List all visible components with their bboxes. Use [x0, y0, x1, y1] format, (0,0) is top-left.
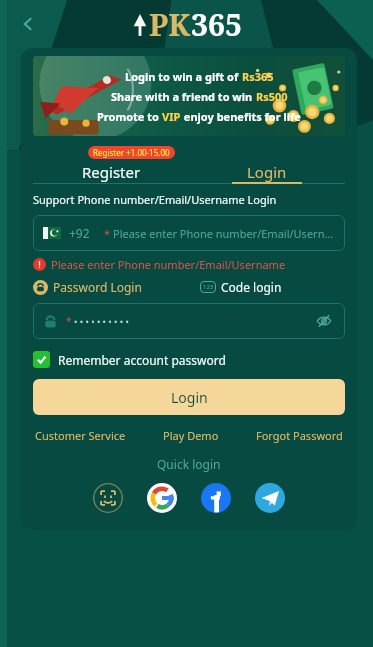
- button[interactable]: Sign in with Google: [146, 482, 178, 514]
- staticText: Please enter Phone number/Email/Username: [51, 257, 286, 272]
- staticText: Password Login: [53, 279, 142, 295]
- staticText: Code login: [221, 279, 282, 295]
- staticText: enjoy benefits for life: [181, 109, 301, 124]
- staticText: Support Phone number/Email/Username Logi…: [33, 192, 277, 207]
- button[interactable]: Play Demo: [161, 427, 221, 444]
- button[interactable]: Forgot Password: [254, 427, 345, 444]
- staticText: *: [66, 314, 72, 328]
- staticText: Promote to: [97, 109, 162, 124]
- staticText: VIP: [162, 109, 181, 124]
- button[interactable]: Remember account password: [33, 351, 226, 368]
- staticText: Share with a friend to win: [111, 89, 256, 104]
- button[interactable]: Login: [189, 146, 345, 182]
- staticText: Login to win a gift of: [125, 69, 242, 84]
- staticText: Login: [247, 162, 287, 182]
- button[interactable]: *: [33, 303, 345, 339]
- button[interactable]: Back: [8, 4, 48, 44]
- staticText: 123: [203, 283, 214, 291]
- staticText: Rs365: [242, 69, 274, 84]
- button[interactable]: Quick login: [157, 456, 221, 472]
- button[interactable]: +92: [33, 215, 345, 251]
- button[interactable]: Sign in with Telegram: [254, 482, 286, 514]
- button[interactable]: Customer Service: [33, 427, 128, 444]
- staticText: 365: [191, 4, 242, 45]
- button[interactable]: Login: [33, 379, 345, 415]
- button[interactable]: 123: [200, 279, 282, 295]
- staticText: +92: [69, 225, 90, 241]
- button[interactable]: Face ID login: [92, 482, 124, 514]
- staticText: Rs500: [256, 89, 288, 104]
- staticText: Forgot Password: [256, 428, 343, 443]
- staticText: PK: [149, 4, 191, 45]
- staticText: Register +1.00-15.00: [93, 147, 170, 158]
- staticText: Register: [82, 162, 141, 182]
- button[interactable]: Show password: [313, 310, 335, 332]
- button[interactable]: Sign in with Facebook: [200, 482, 232, 514]
- button[interactable]: Login to win a gift of: [33, 56, 345, 136]
- staticText: Please enter Phone number/Email/Usern…: [113, 226, 334, 241]
- staticText: Customer Service: [35, 428, 126, 443]
- staticText: *: [104, 226, 111, 241]
- staticText: Play Demo: [163, 428, 219, 443]
- button[interactable]: Password Login: [33, 279, 142, 295]
- button[interactable]: Register: [33, 146, 189, 182]
- staticText: Login: [171, 388, 208, 407]
- staticText: • • • • • • • • • •: [74, 315, 129, 327]
- staticText: Remember account password: [58, 352, 226, 368]
